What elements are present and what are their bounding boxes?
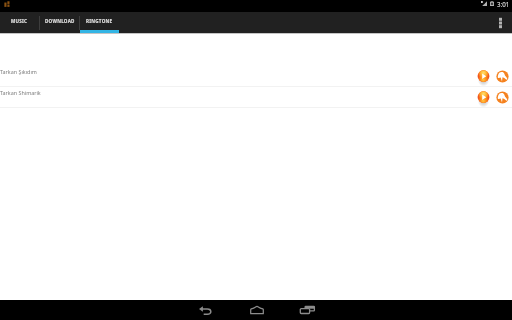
staticText: DOWNLOAD	[45, 18, 75, 24]
button[interactable]: MUSIC	[0, 12, 39, 33]
button[interactable]: DOWNLOAD	[40, 12, 79, 33]
staticText: MUSIC	[11, 18, 28, 24]
button[interactable]: Play	[477, 91, 490, 104]
button[interactable]: Set as ringtone	[496, 91, 509, 104]
button[interactable]: Back	[180, 300, 231, 320]
button[interactable]: Play	[477, 70, 490, 83]
staticText: RINGTONE	[86, 18, 113, 24]
button[interactable]: Tarkan Şıkıdım	[0, 66, 512, 86]
button[interactable]: More options	[489, 12, 512, 33]
staticText: 3:01	[497, 0, 510, 8]
button[interactable]: Recent apps	[282, 300, 333, 320]
button[interactable]: Home	[231, 300, 282, 320]
button[interactable]: RINGTONE	[80, 12, 119, 33]
staticText: Tarkan Shimarik	[0, 89, 41, 96]
button[interactable]: Tarkan Shimarik	[0, 87, 512, 107]
button[interactable]: Set as ringtone	[496, 70, 509, 83]
staticText: Tarkan Şıkıdım	[0, 68, 37, 75]
